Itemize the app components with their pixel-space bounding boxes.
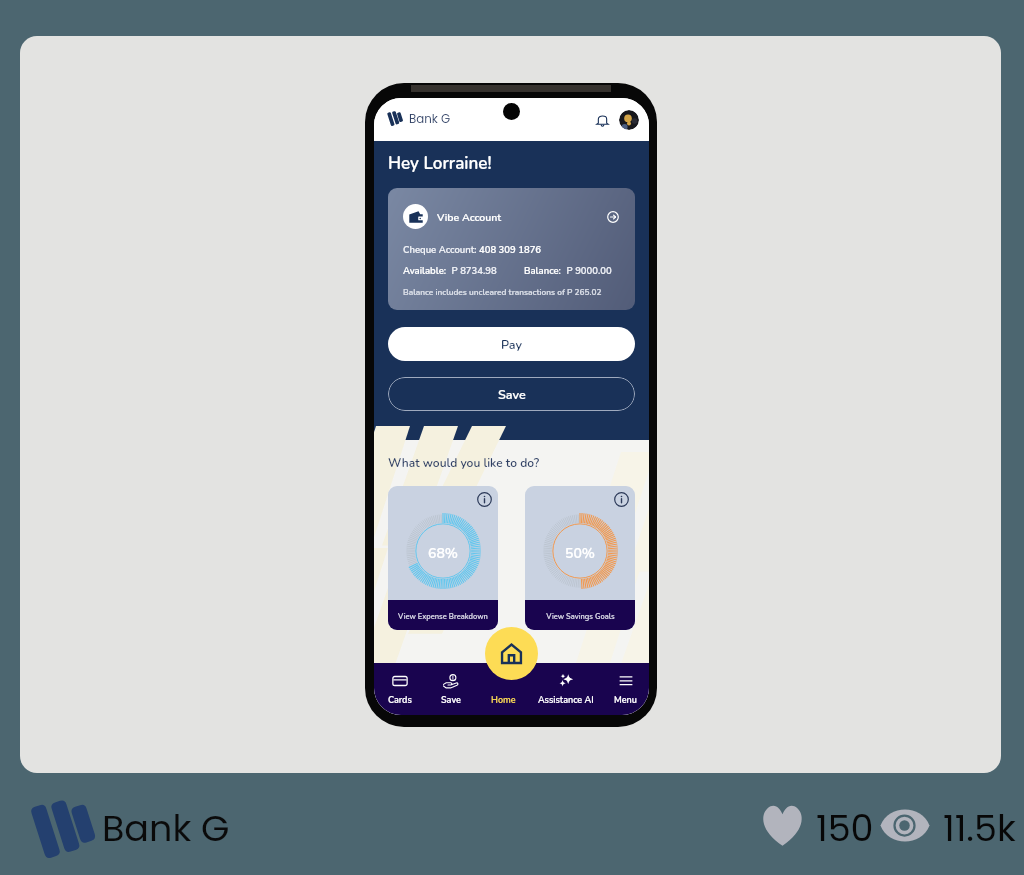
staticText: View Expense Breakdown <box>398 611 488 621</box>
button[interactable]: Save <box>425 663 477 715</box>
staticText: 11.5k <box>943 803 1016 854</box>
staticText: P 8734.98 <box>449 264 497 277</box>
button[interactable]: Home <box>485 627 538 680</box>
button[interactable]: Assistance AI <box>529 663 602 715</box>
staticText: Bank G <box>102 803 230 854</box>
button[interactable]: Profile <box>619 110 639 130</box>
staticText: Pay <box>501 336 522 353</box>
button[interactable]: 50% <box>525 486 635 630</box>
staticText: Menu <box>614 694 637 706</box>
staticText: P 9000.00 <box>564 264 612 277</box>
staticText: Save <box>441 694 461 706</box>
button[interactable]: Open account <box>605 209 621 225</box>
staticText: Available: <box>403 264 449 277</box>
staticText: Save <box>498 386 526 403</box>
staticText: 150 <box>816 803 874 854</box>
staticText: Hey Lorraine! <box>388 152 492 175</box>
button[interactable]: Info <box>614 492 629 507</box>
staticText: 408 309 1876 <box>479 243 542 256</box>
staticText: 68% <box>428 544 458 563</box>
button[interactable]: Save <box>388 377 635 411</box>
button[interactable]: 68% <box>388 486 498 630</box>
button[interactable]: Bank G <box>387 111 451 128</box>
staticText: Balance: <box>524 264 564 277</box>
staticText: Bank G <box>409 111 451 128</box>
staticText: Vibe Account <box>437 210 502 224</box>
staticText: Cheque Account: <box>403 243 479 256</box>
staticText: Assistance AI <box>538 694 594 706</box>
staticText: Balance includes uncleared transactions … <box>403 287 602 298</box>
staticText: Cards <box>388 694 412 706</box>
button[interactable]: Info <box>477 492 492 507</box>
staticText: What would you like to do? <box>388 455 540 471</box>
staticText: Home <box>491 694 516 706</box>
button[interactable]: Vibe Account <box>388 188 635 310</box>
button[interactable]: Menu <box>602 663 649 715</box>
button[interactable]: Pay <box>388 327 635 361</box>
button[interactable]: Notifications <box>592 110 612 130</box>
staticText: View Savings Goals <box>546 611 615 621</box>
staticText: 50% <box>565 544 595 563</box>
button[interactable]: Home <box>477 663 529 715</box>
button[interactable]: Cards <box>374 663 425 715</box>
